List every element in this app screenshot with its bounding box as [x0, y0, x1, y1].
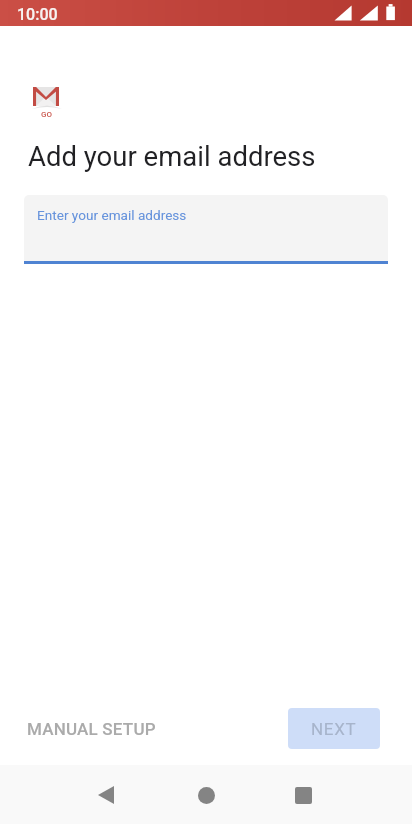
button[interactable]: Recent apps: [275, 767, 331, 823]
button[interactable]: Enter your email address: [24, 195, 388, 261]
button[interactable]: NEXT: [288, 708, 380, 749]
button[interactable]: Home: [178, 767, 234, 823]
staticText: 10:00: [17, 5, 58, 24]
staticText: MANUAL SETUP: [27, 719, 156, 739]
staticText: GO: [41, 110, 52, 119]
button[interactable]: Back: [78, 767, 134, 823]
staticText: Add your email address: [28, 140, 316, 172]
staticText: NEXT: [311, 719, 357, 739]
staticText: Enter your email address: [37, 207, 187, 223]
button[interactable]: MANUAL SETUP: [11, 708, 172, 749]
